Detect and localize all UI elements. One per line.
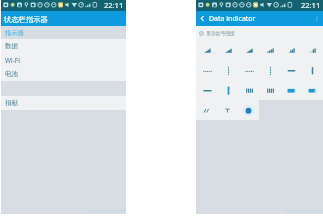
button[interactable]: Indicator style 12: [302, 60, 323, 80]
button[interactable]: Back: [196, 11, 208, 26]
button[interactable]: 数据: [1, 39, 126, 53]
staticText: Wi-Fi: [5, 56, 20, 65]
button[interactable]: More options: [310, 12, 323, 25]
button[interactable]: Indicator style 2: [218, 40, 239, 60]
button[interactable]: Indicator style 20: [217, 100, 238, 120]
button[interactable]: Wi-Fi: [1, 53, 126, 67]
button[interactable]: 捐献: [1, 96, 126, 110]
button[interactable]: Indicator style 15: [239, 80, 260, 100]
button[interactable]: Indicator style 8: [218, 60, 239, 80]
button[interactable]: 电池: [1, 67, 126, 81]
staticText: anzhuo.zol.com.cn: [286, 208, 323, 214]
button[interactable]: Indicator style 4: [260, 40, 281, 60]
staticText: 22:11: [301, 0, 321, 10]
button[interactable]: Indicator style 17: [281, 80, 302, 100]
staticText: 状态栏指示器: [4, 15, 48, 24]
staticText: 22:11: [104, 0, 124, 10]
button[interactable]: Indicator style 7: [196, 60, 218, 80]
button[interactable]: Indicator style 14: [218, 80, 239, 100]
staticText: 显示信号强度: [206, 30, 235, 36]
button[interactable]: Indicator style 16: [260, 80, 281, 100]
button[interactable]: Indicator style 19: [196, 100, 217, 120]
button[interactable]: Indicator style 6: [302, 40, 323, 60]
button[interactable]: Indicator style 11: [281, 60, 302, 80]
button[interactable]: Indicator style 21: [238, 100, 259, 120]
staticText: 指示器: [5, 29, 24, 37]
staticText: 数据: [5, 42, 18, 50]
button[interactable]: Indicator style 5: [281, 40, 302, 60]
button[interactable]: Indicator style 1: [196, 40, 218, 60]
button[interactable]: Indicator style 3: [239, 40, 260, 60]
staticText: anzhuo.zol.com.cn: [89, 208, 126, 214]
staticText: 电池: [5, 70, 18, 78]
button[interactable]: Indicator style 10: [260, 60, 281, 80]
button[interactable]: Indicator style 9: [239, 60, 260, 80]
staticText: 捐献: [5, 99, 18, 107]
button[interactable]: Indicator style 18: [302, 80, 323, 100]
button[interactable]: Indicator style 13: [196, 80, 218, 100]
button[interactable]: 显示信号强度: [196, 26, 323, 40]
staticText: Data indicator: [209, 14, 256, 24]
